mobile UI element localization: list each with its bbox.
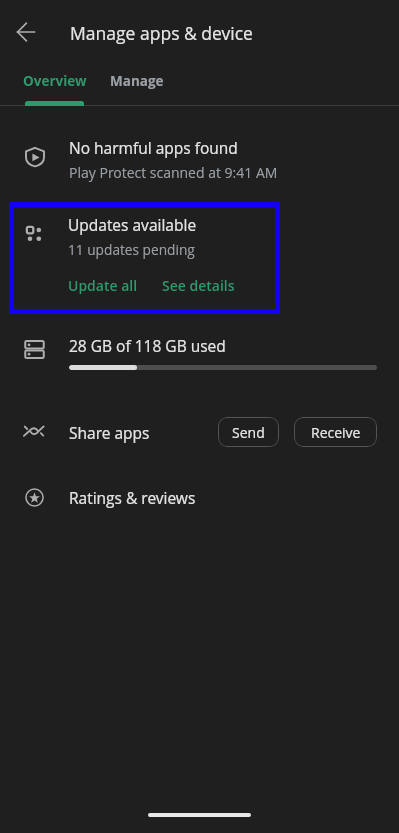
button[interactable]: Send <box>218 417 279 447</box>
staticText: Manage <box>110 72 164 90</box>
staticText: No harmful apps found <box>69 137 238 158</box>
staticText: Manage apps & device <box>70 21 253 45</box>
staticText: Overview <box>23 72 87 90</box>
button[interactable]: Receive <box>294 417 377 447</box>
button[interactable]: Share apps <box>0 407 399 457</box>
staticText: Play Protect scanned at 9:41 AM <box>69 163 278 182</box>
staticText: 28 GB of 118 GB used <box>69 335 226 356</box>
staticText: Updates available <box>68 214 197 235</box>
button[interactable]: Overview <box>10 66 99 96</box>
button[interactable]: Back <box>2 8 50 56</box>
button[interactable]: Update all <box>68 276 138 295</box>
button[interactable]: No harmful apps found <box>0 128 399 190</box>
staticText: Receive <box>311 423 361 442</box>
staticText: Send <box>232 423 265 442</box>
button[interactable]: Manage <box>99 66 175 96</box>
button[interactable]: 28 GB of 118 GB used <box>0 325 399 383</box>
button[interactable]: See details <box>162 276 235 295</box>
button[interactable]: Ratings & reviews <box>0 473 399 521</box>
button[interactable]: Updates available <box>9 202 280 314</box>
staticText: Share apps <box>69 422 150 443</box>
staticText: Ratings & reviews <box>69 487 196 508</box>
staticText: 11 updates pending <box>68 240 195 259</box>
